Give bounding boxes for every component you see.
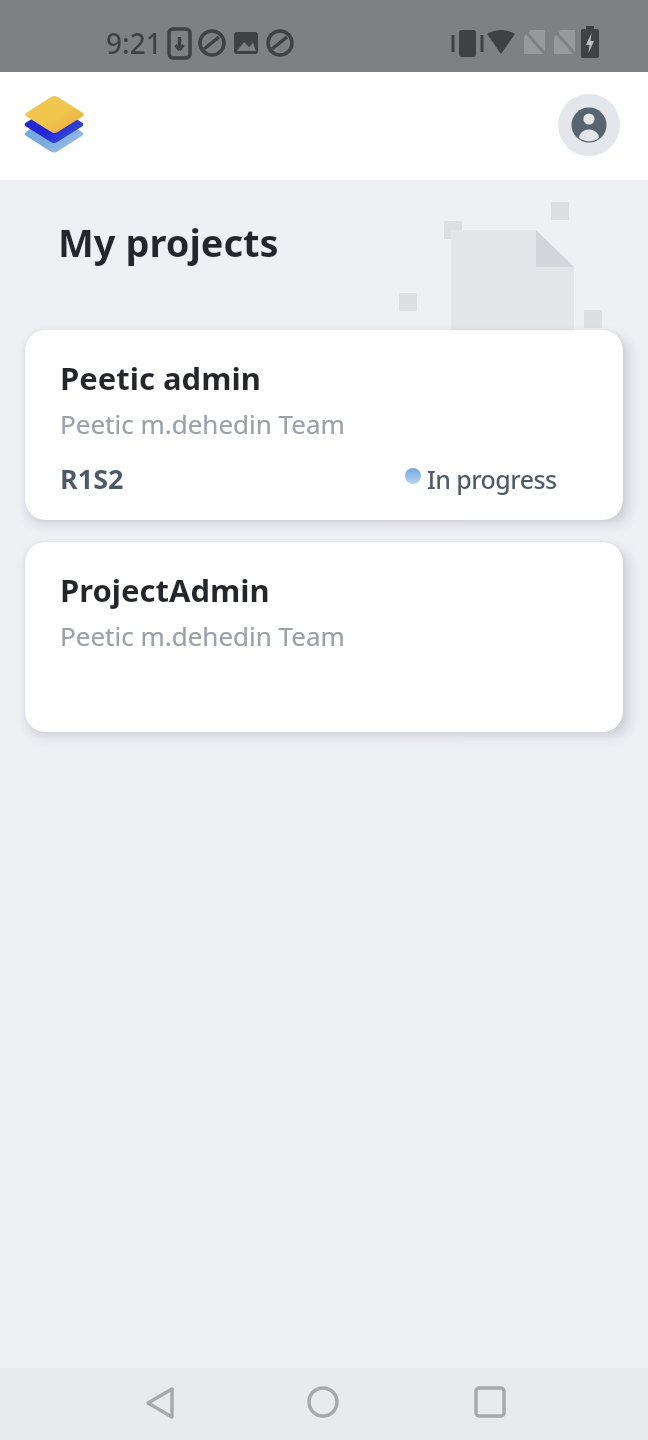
staticText: Peetic m.dehedin Team	[60, 618, 345, 653]
staticText: Peetic m.dehedin Team	[60, 406, 345, 441]
staticText: ProjectAdmin	[60, 569, 270, 611]
staticText: Peetic admin	[60, 357, 261, 399]
staticText: In progress	[427, 462, 557, 496]
staticText: R1S2	[60, 460, 124, 497]
staticText: 9:21	[106, 24, 162, 62]
staticText: My projects	[58, 216, 279, 268]
